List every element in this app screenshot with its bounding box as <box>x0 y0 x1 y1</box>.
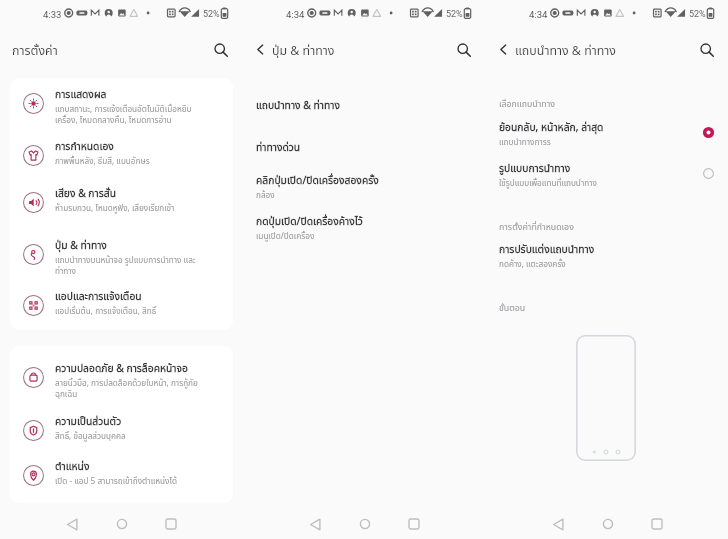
staticText: เลือกแถบนำทาง <box>499 98 555 111</box>
button[interactable]: คลิกปุ่มเปิด/ปิดเครื่องสองครั้ง <box>243 172 486 205</box>
button[interactable]: Home <box>109 511 135 537</box>
staticText: แอปเริ่มต้น, การแจ้งเตือน, สิทธิ์ <box>55 305 157 317</box>
staticText: แถบนำทาง & ท่าทาง <box>515 42 616 61</box>
staticText: สิทธิ์, ข้อมูลส่วนบุคคล <box>55 430 126 442</box>
staticText: การตั้งค่าที่กำหนดเอง <box>499 221 574 234</box>
staticText: เมนูเปิด/ปิดเครื่อง <box>256 230 315 242</box>
button[interactable]: Recents <box>158 511 184 537</box>
button[interactable]: ความปลอดภัย & การล็อคหน้าจอ <box>10 352 233 405</box>
staticText: คลิกปุ่มเปิด/ปิดเครื่องสองครั้ง <box>256 173 379 189</box>
button[interactable]: ตำแหน่ง <box>10 450 233 500</box>
staticText: การตั้งค่า <box>12 42 58 61</box>
button[interactable]: ปุ่ม & ท่าทาง <box>10 229 233 280</box>
button[interactable]: Recents <box>644 511 670 537</box>
button[interactable]: Back <box>545 511 571 537</box>
staticText: รูปแบบการนำทาง <box>499 161 571 177</box>
staticText: 4:33 <box>43 9 62 20</box>
staticText: 52% <box>446 9 463 20</box>
staticText: แถบนำทางการร <box>499 136 551 148</box>
button[interactable]: Recents <box>401 511 427 537</box>
staticText: การปรับแต่งแถบนำทาง <box>499 242 595 258</box>
staticText: แถบนำทาง & ท่าทาง <box>256 98 340 114</box>
staticText: การแสดงผล <box>55 87 107 103</box>
staticText: ปุ่ม & ท่าทาง <box>55 238 107 254</box>
staticText: แอปและการแจ้งเตือน <box>55 289 142 305</box>
button[interactable]: Navigate up <box>491 37 515 61</box>
staticText: ท่าทางด่วน <box>256 140 301 156</box>
staticText: เปิด - แอป 5 สามารถเข้าถึงตำแหน่งได้ <box>55 475 177 487</box>
staticText: ความปลอดภัย & การล็อคหน้าจอ <box>55 361 188 377</box>
button[interactable]: Search <box>208 37 234 63</box>
staticText: 4:34 <box>529 9 548 20</box>
staticText: กล้อง <box>256 189 275 201</box>
button[interactable]: Back <box>302 511 328 537</box>
button[interactable]: Navigate up <box>248 37 272 61</box>
button[interactable]: Back <box>59 511 85 537</box>
button[interactable]: แถบนำทาง & ท่าทาง <box>243 97 486 118</box>
staticText: ตำแหน่ง <box>55 459 90 475</box>
button[interactable]: การปรับแต่งแถบนำทาง <box>486 241 728 274</box>
staticText: ลายนิ้วมือ, การปลดล็อคด้วยใบหน้า, การกู้… <box>55 377 198 401</box>
staticText: แถบสถานะ, การแจ้งเตือนอัตโนมัติเมื่อหยิบ… <box>55 103 192 127</box>
button[interactable]: ความเป็นส่วนตัว <box>10 405 233 450</box>
button[interactable]: Search <box>694 37 720 63</box>
staticText: การกำหนดเอง <box>55 139 114 155</box>
button[interactable]: ย้อนกลับ, หน้าหลัก, ล่าสุด <box>486 119 728 152</box>
staticText: ขั้นตอน <box>499 302 526 315</box>
staticText: ย้อนกลับ, หน้าหลัก, ล่าสุด <box>499 120 604 136</box>
button[interactable]: การกำหนดเอง <box>10 130 233 177</box>
staticText: ห้ามรบกวน, โหมดหูฟัง, เสียงเรียกเข้า <box>55 202 175 214</box>
staticText: กดปุ่มเปิด/ปิดเครื่องค้างไว้ <box>256 214 363 230</box>
staticText: ใช้รูปแบบเพื่อแทนที่แถบนำทาง <box>499 177 597 189</box>
staticText: แถบนำทางบนหน้าจอ รูปแบบการนำทาง และ ท่าท… <box>55 254 196 278</box>
staticText: ภาพพื้นหลัง, ธีมสี, แบบอักษร <box>55 155 150 167</box>
button[interactable]: Home <box>595 511 621 537</box>
staticText: กดค้าง, แตะสองครั้ง <box>499 258 566 270</box>
button[interactable]: Search <box>451 37 477 63</box>
staticText: เสียง & การสั่น <box>55 186 116 202</box>
button[interactable]: รูปแบบการนำทาง <box>486 160 728 193</box>
button[interactable]: เสียง & การสั่น <box>10 177 233 229</box>
staticText: ปุ่ม & ท่าทาง <box>272 42 335 61</box>
button[interactable]: กดปุ่มเปิด/ปิดเครื่องค้างไว้ <box>243 213 486 246</box>
button[interactable]: การแสดงผล <box>10 78 233 130</box>
button[interactable]: แอปและการแจ้งเตือน <box>10 280 233 330</box>
staticText: 52% <box>203 9 220 20</box>
staticText: ความเป็นส่วนตัว <box>55 414 122 430</box>
staticText: 4:34 <box>286 9 305 20</box>
staticText: 52% <box>689 9 706 20</box>
button[interactable]: ท่าทางด่วน <box>243 139 486 160</box>
button[interactable]: Home <box>352 511 378 537</box>
